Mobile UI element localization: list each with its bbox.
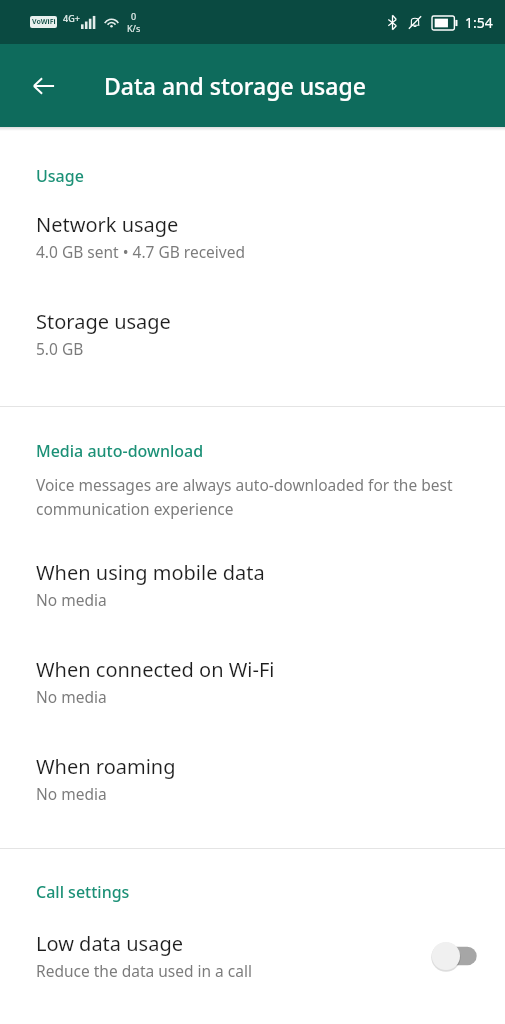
button[interactable]: When roaming	[0, 713, 505, 810]
staticText: Data and storage usage	[104, 70, 366, 101]
staticText: No media	[36, 686, 107, 707]
staticText: 5.0 GB	[36, 338, 84, 359]
button[interactable]: Low data usage toggle	[425, 936, 483, 976]
staticText: No media	[36, 783, 107, 804]
staticText: When connected on Wi-Fi	[36, 656, 275, 683]
button[interactable]: When using mobile data	[0, 519, 505, 616]
button[interactable]: Back	[20, 62, 68, 110]
staticText: 4.0 GB sent • 4.7 GB received	[36, 241, 246, 262]
staticText: Low data usage	[36, 930, 183, 957]
staticText: 0	[131, 10, 137, 22]
staticText: Media auto-download	[36, 440, 204, 462]
staticText: Reduce the data used in a call	[36, 960, 252, 981]
button[interactable]: Network usage	[0, 187, 505, 268]
staticText: Voice messages are always auto-downloade…	[36, 474, 487, 519]
staticText: K/s	[127, 22, 141, 34]
staticText: 4G+	[63, 12, 80, 24]
button[interactable]: Storage usage	[0, 268, 505, 365]
staticText: When roaming	[36, 753, 176, 780]
staticText: 1:54	[465, 13, 493, 32]
button[interactable]: When connected on Wi-Fi	[0, 616, 505, 713]
staticText: No media	[36, 589, 107, 610]
staticText: Storage usage	[36, 308, 171, 335]
staticText: Usage	[36, 165, 84, 187]
staticText: Network usage	[36, 211, 179, 238]
staticText: VoWiFi	[32, 17, 56, 27]
staticText: Call settings	[36, 881, 130, 903]
button[interactable]: Low data usage	[0, 903, 505, 987]
staticText: When using mobile data	[36, 559, 265, 586]
